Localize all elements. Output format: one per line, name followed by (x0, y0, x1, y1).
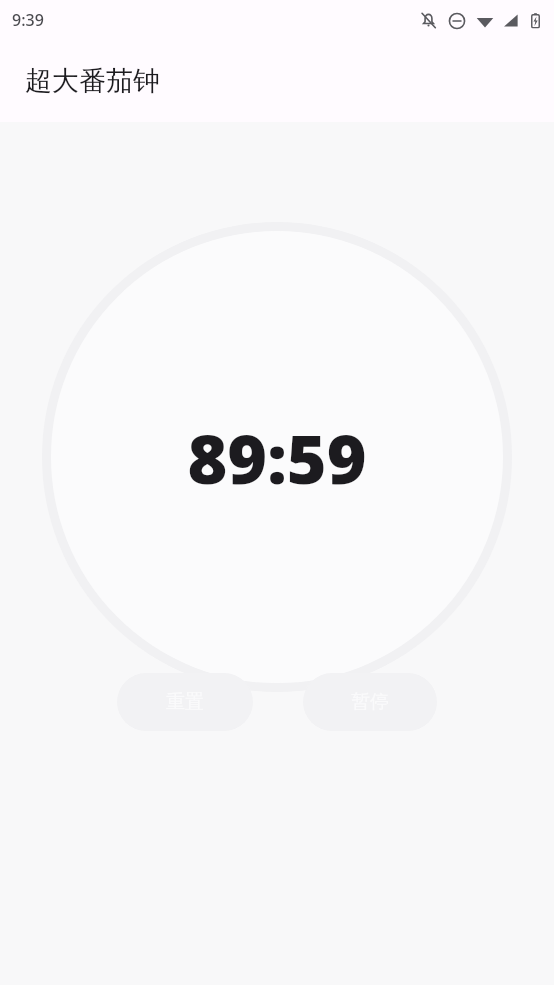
staticText: 暂停 (351, 690, 389, 714)
staticText: 9:39 (12, 9, 44, 31)
staticText: 89:59 (187, 411, 367, 504)
staticText: 重置 (166, 690, 204, 714)
staticText: 超大番茄钟 (25, 64, 160, 98)
